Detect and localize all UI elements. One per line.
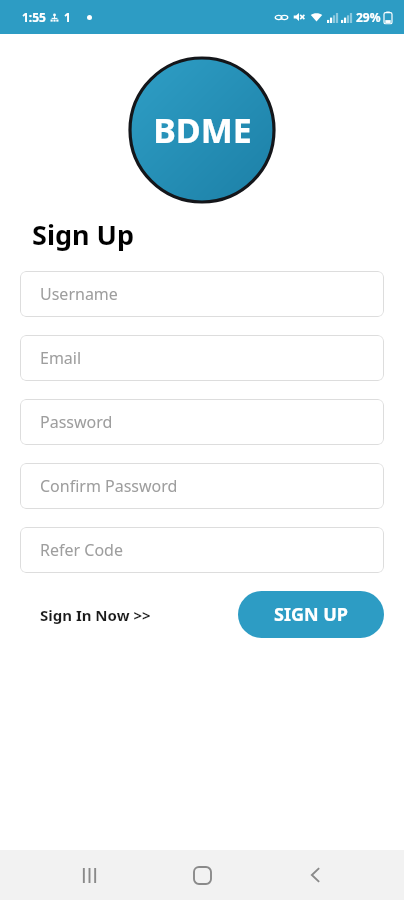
staticText: 29% — [356, 9, 381, 25]
staticText: 1 — [64, 9, 71, 25]
button[interactable]: Home — [178, 851, 226, 899]
staticText: Sign Up — [32, 216, 135, 253]
button[interactable]: Back — [291, 851, 339, 899]
staticText: Sign In Now >> — [40, 605, 151, 625]
button[interactable]: Email — [20, 335, 384, 381]
staticText: SIGN UP — [274, 602, 349, 627]
staticText: Confirm Password — [40, 475, 178, 497]
staticText: Username — [40, 283, 118, 305]
staticText: Refer Code — [40, 539, 123, 561]
button[interactable]: SIGN UP — [238, 591, 384, 638]
staticText: 1:55 — [22, 9, 46, 25]
button[interactable]: Recent apps — [65, 851, 113, 899]
staticText: Email — [40, 347, 82, 369]
button[interactable]: Password — [20, 399, 384, 445]
button[interactable]: Confirm Password — [20, 463, 384, 509]
staticText: Password — [40, 411, 113, 433]
button[interactable]: Sign In Now >> — [20, 595, 171, 635]
button[interactable]: Username — [20, 271, 384, 317]
staticText: BDME — [153, 107, 252, 153]
button[interactable]: Refer Code — [20, 527, 384, 573]
